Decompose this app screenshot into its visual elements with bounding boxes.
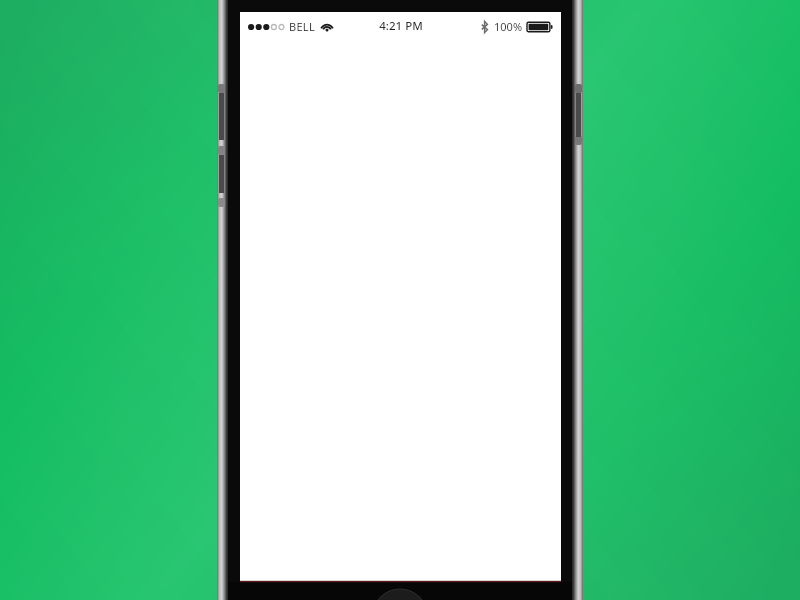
staticText: BELL	[289, 19, 315, 34]
other: Bluetooth	[481, 21, 489, 33]
other: Battery full	[527, 21, 553, 33]
staticText: 4:21 PM	[379, 18, 423, 34]
staticText: 100%	[494, 19, 523, 34]
other: Wi-Fi signal	[320, 21, 334, 32]
